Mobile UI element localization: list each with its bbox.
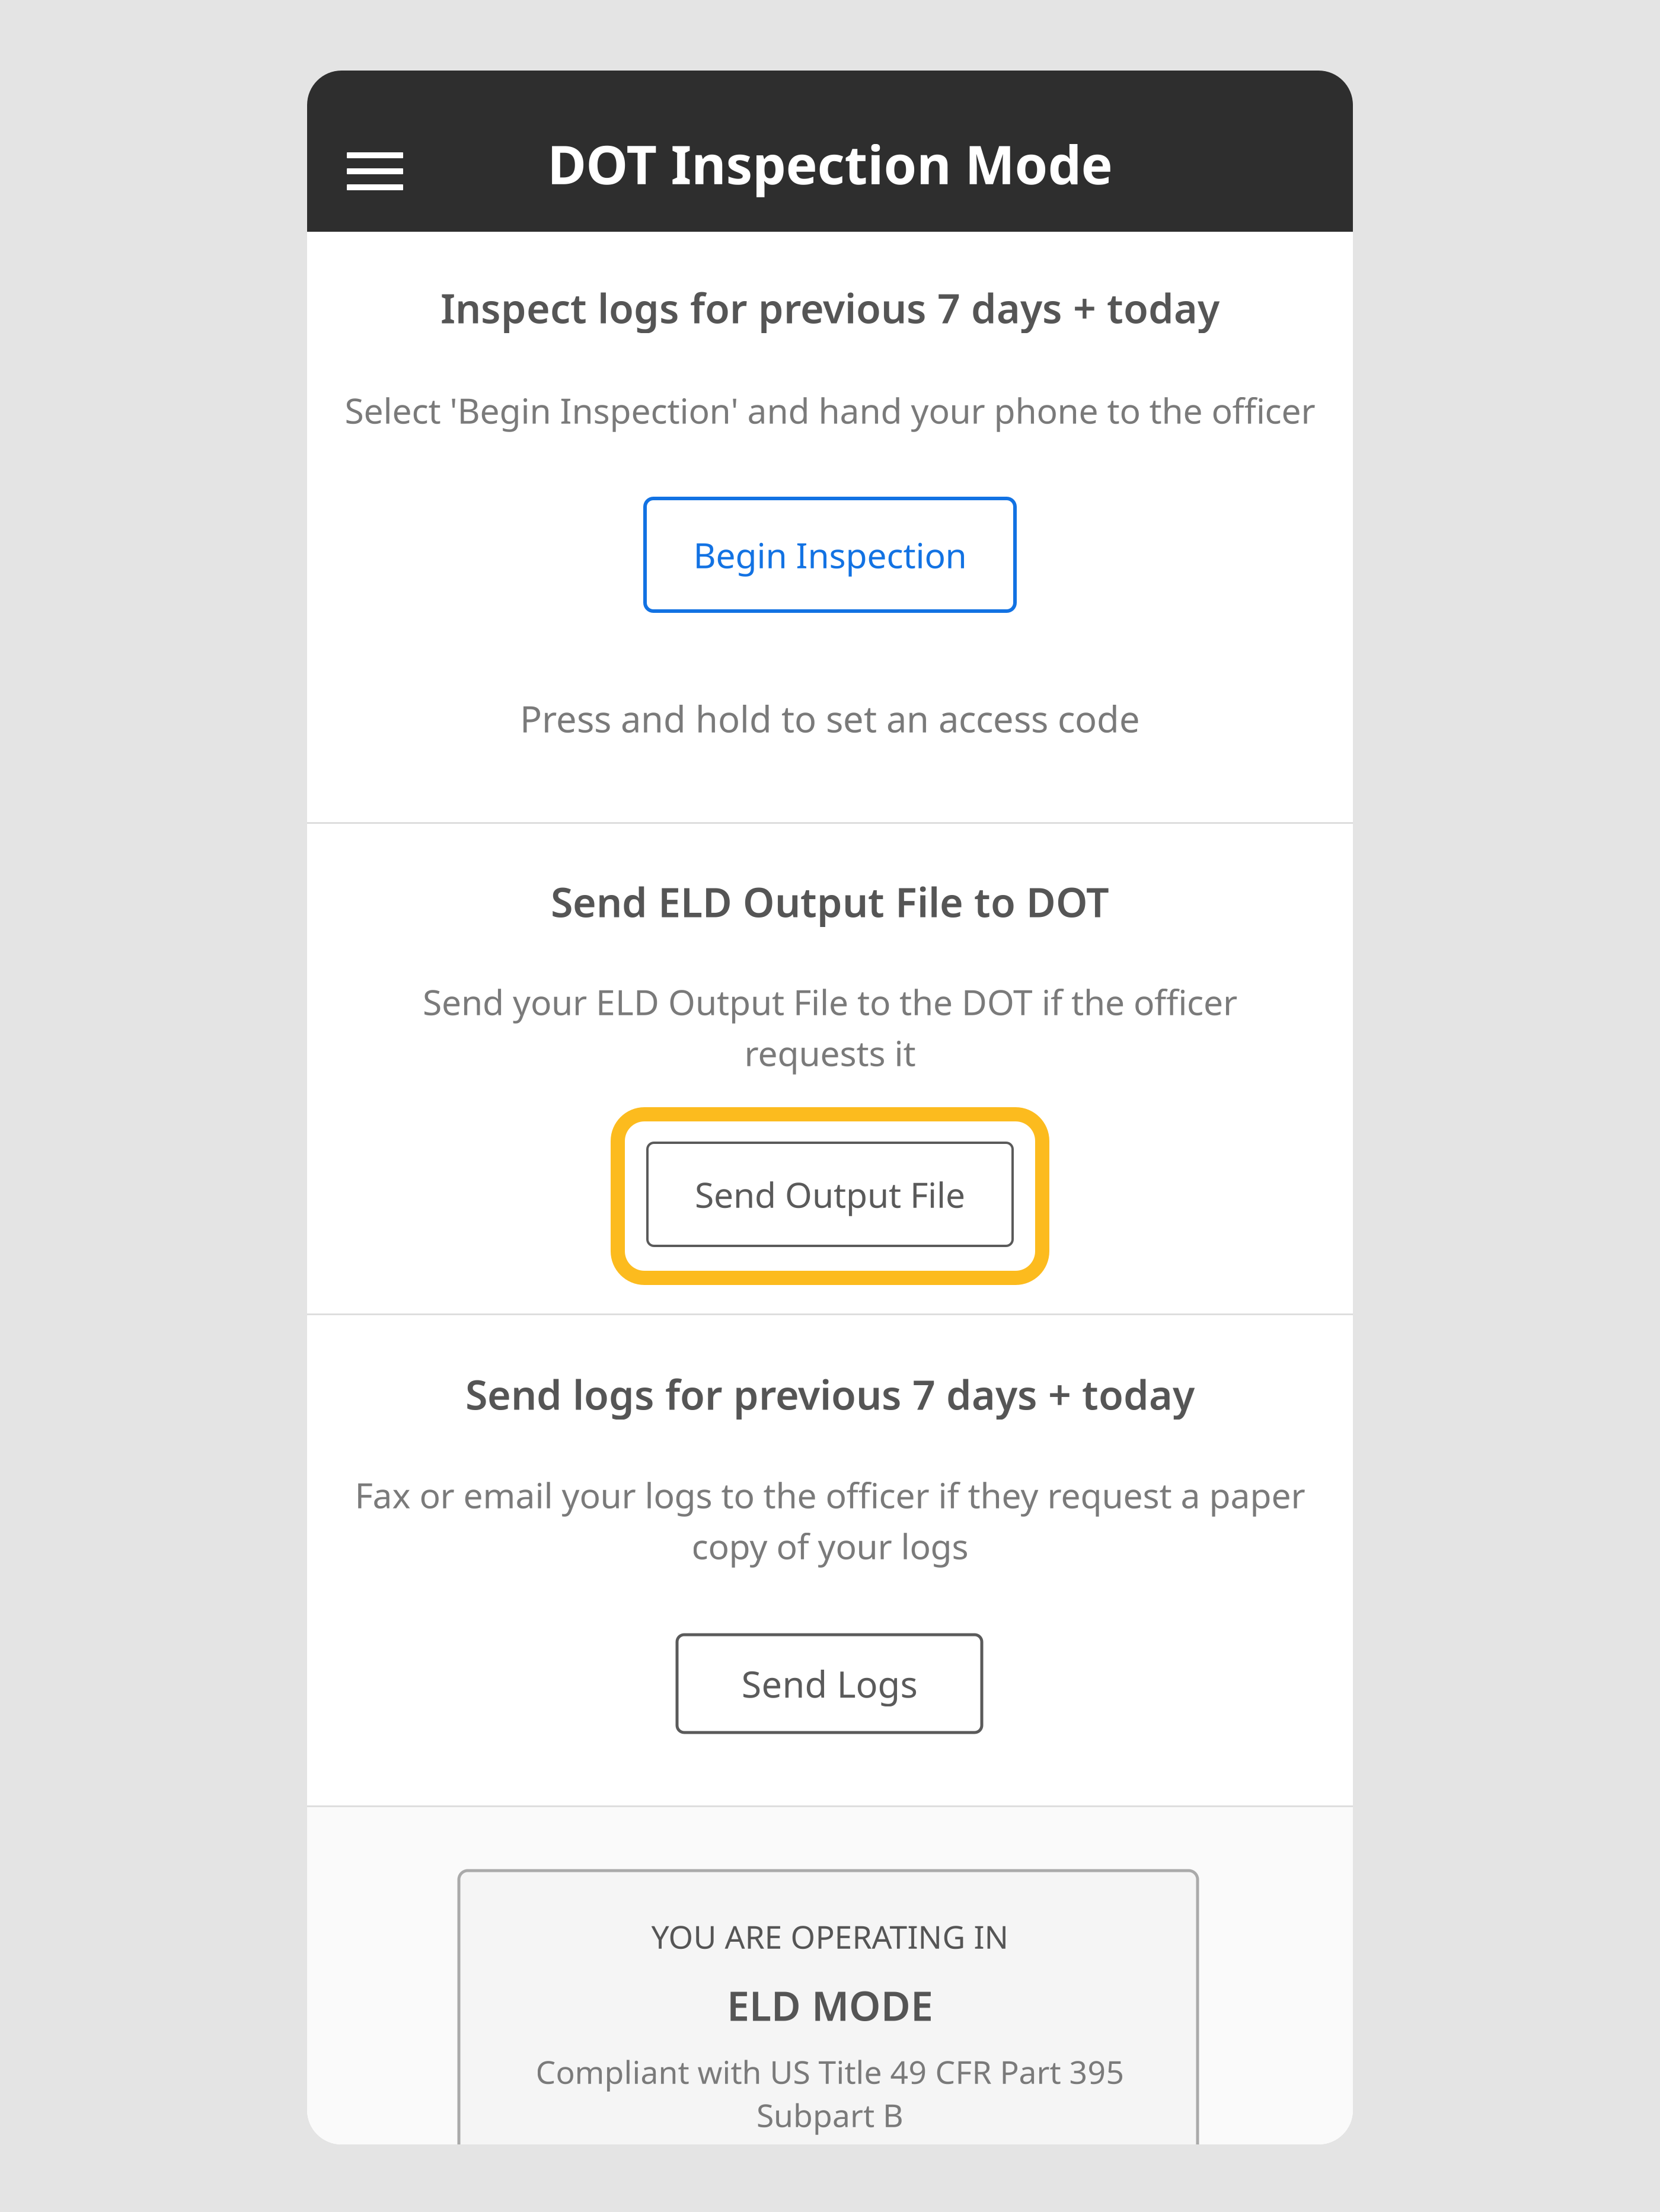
staticText: Send logs for previous 7 days + today bbox=[465, 1367, 1195, 1421]
staticText: Subpart B bbox=[756, 2094, 904, 2136]
staticText: Send ELD Output File to DOT bbox=[551, 875, 1109, 928]
button[interactable]: Send Output File bbox=[618, 1114, 1042, 1278]
staticText: Inspect logs for previous 7 days + today bbox=[440, 281, 1220, 334]
button[interactable]: Send Logs bbox=[677, 1635, 982, 1732]
staticText: Fax or email your logs to the officer if… bbox=[355, 1472, 1305, 1518]
staticText: Select 'Begin Inspection' and hand your … bbox=[345, 387, 1315, 433]
staticText: Send Logs bbox=[741, 1659, 917, 1708]
staticText: ELD MODE bbox=[727, 1978, 933, 2032]
staticText: Begin Inspection bbox=[693, 532, 967, 578]
staticText: DOT Inspection Mode bbox=[548, 128, 1112, 199]
button[interactable]: Menu bbox=[309, 114, 441, 228]
staticText: Press and hold to set an access code bbox=[520, 694, 1140, 742]
button[interactable]: Begin Inspection bbox=[645, 498, 1015, 611]
staticText: Send Output File bbox=[695, 1171, 965, 1217]
staticText: copy of your logs bbox=[692, 1523, 968, 1569]
staticText: Compliant with US Title 49 CFR Part 395 bbox=[536, 2051, 1124, 2093]
staticText: Send your ELD Output File to the DOT if … bbox=[423, 979, 1237, 1025]
staticText: requests it bbox=[744, 1030, 916, 1076]
staticText: YOU ARE OPERATING IN bbox=[651, 1915, 1009, 1957]
